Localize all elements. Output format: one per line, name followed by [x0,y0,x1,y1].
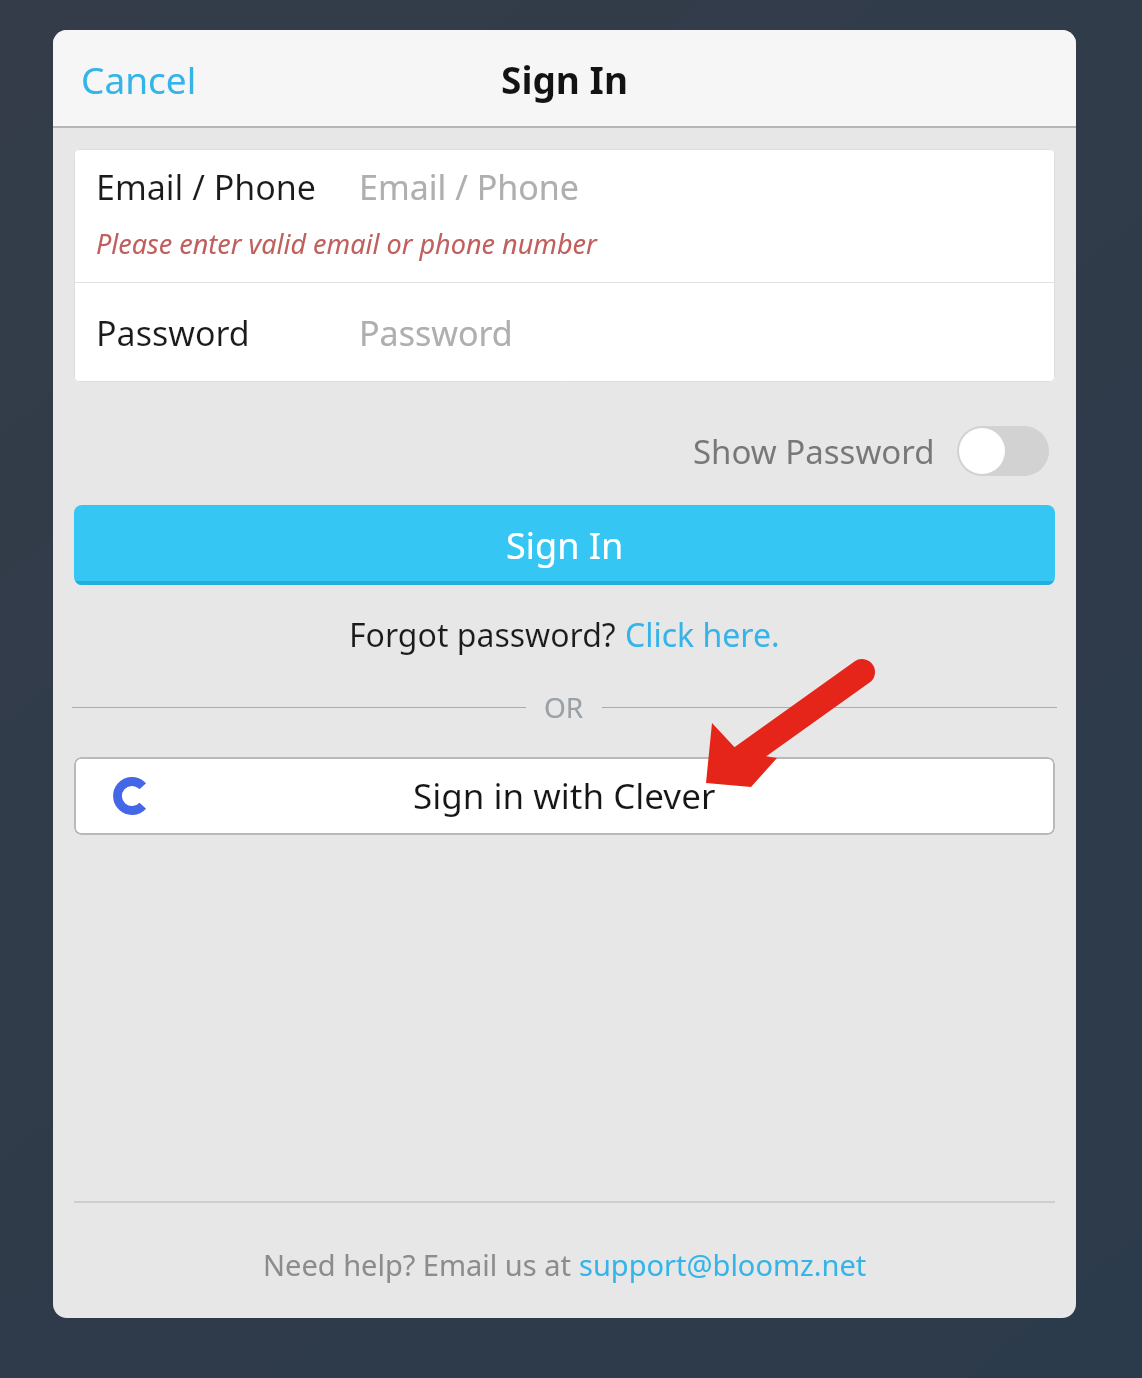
staticText: Password [96,310,250,356]
staticText: Password [359,310,513,356]
staticText: support@bloomz.net [579,1245,867,1284]
staticText: Cancel [81,54,197,104]
staticText: Sign in with Clever [413,772,716,820]
staticText: OR [544,688,584,726]
button[interactable]: Password [74,283,1055,382]
staticText: Email / Phone [96,164,316,210]
button[interactable]: Cancel [63,44,215,114]
staticText: Email / Phone [359,164,579,210]
staticText: Click here. [625,613,780,657]
staticText: Need help? Email us at [263,1245,579,1284]
staticText: Sign In [506,521,624,570]
staticText: Show Password [693,429,935,474]
staticText: Please enter valid email or phone number [96,225,597,262]
staticText: Sign In [501,54,628,104]
button[interactable]: Sign In [74,505,1055,585]
staticText: Forgot password? [349,613,625,657]
button[interactable]: Forgot password? [341,607,788,663]
button[interactable]: Show Password [687,420,1055,482]
button[interactable]: Need help? Email us at [255,1241,875,1288]
button[interactable]: Sign in with Clever [74,757,1055,835]
button[interactable]: Email / Phone [74,149,1055,282]
